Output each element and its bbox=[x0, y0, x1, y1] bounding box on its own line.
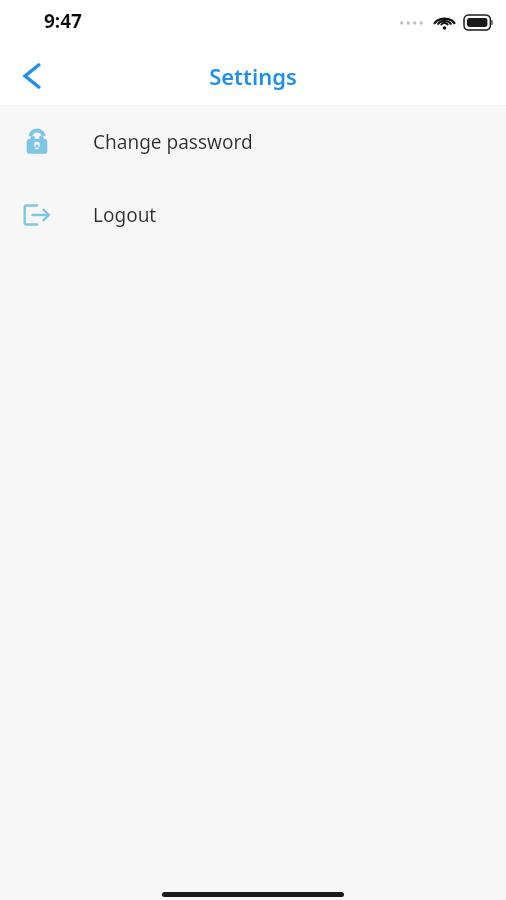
button[interactable]: Back bbox=[8, 53, 54, 99]
staticText: 9:47 bbox=[44, 8, 82, 34]
other: Change password bbox=[22, 127, 52, 157]
staticText: Settings bbox=[0, 61, 506, 91]
button[interactable]: Change password bbox=[0, 119, 506, 165]
staticText: Logout bbox=[93, 202, 157, 228]
other: Logout bbox=[22, 200, 52, 230]
button[interactable]: Logout bbox=[0, 192, 506, 238]
staticText: Change password bbox=[93, 129, 253, 155]
